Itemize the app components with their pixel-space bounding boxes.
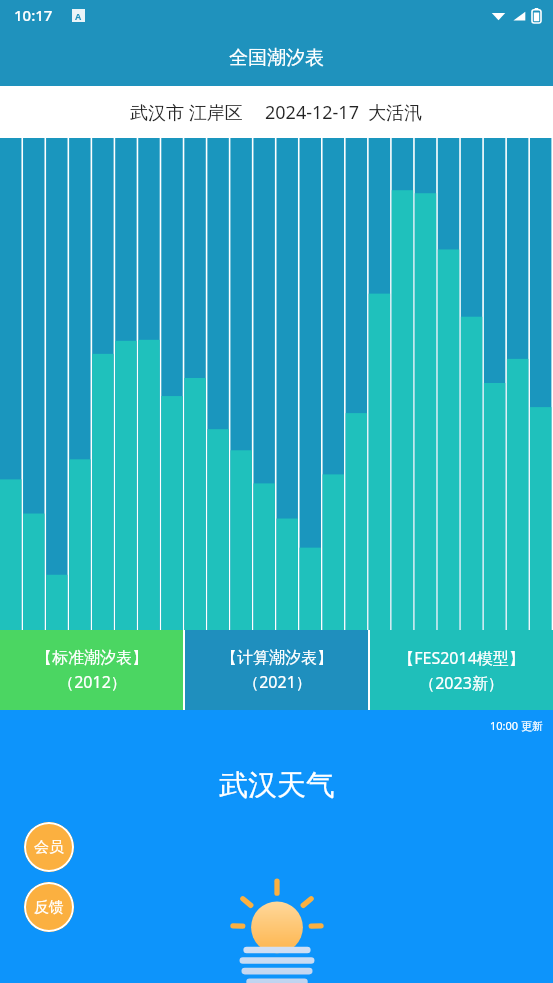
staticText: 2024-12-17 大活汛 [265, 100, 423, 125]
staticText: 【标准潮汐表】 [36, 648, 148, 668]
staticText: （2021） [243, 671, 312, 693]
button[interactable]: 【计算潮汐表】 [185, 630, 368, 710]
staticText: 10:00 更新 [490, 718, 543, 733]
staticText: 武汉天气 [219, 767, 335, 804]
button[interactable]: 反馈 [24, 882, 74, 932]
staticText: 全国潮汐表 [229, 46, 324, 70]
staticText: 【计算潮汐表】 [221, 648, 333, 668]
staticText: （2023新） [419, 672, 504, 694]
button[interactable]: 【FES2014模型】 [370, 630, 553, 710]
staticText: 会员 [34, 838, 64, 857]
staticText: 反馈 [34, 898, 64, 917]
staticText: 武汉市 江岸区 [130, 100, 243, 125]
staticText: 10:17 [14, 5, 53, 25]
staticText: （2012） [58, 671, 127, 693]
button[interactable]: 会员 [24, 822, 74, 872]
staticText: A [75, 10, 82, 22]
staticText: 【FES2014模型】 [398, 647, 525, 669]
button[interactable]: 【标准潮汐表】 [0, 630, 183, 710]
other: Sunrise weather [229, 878, 325, 983]
